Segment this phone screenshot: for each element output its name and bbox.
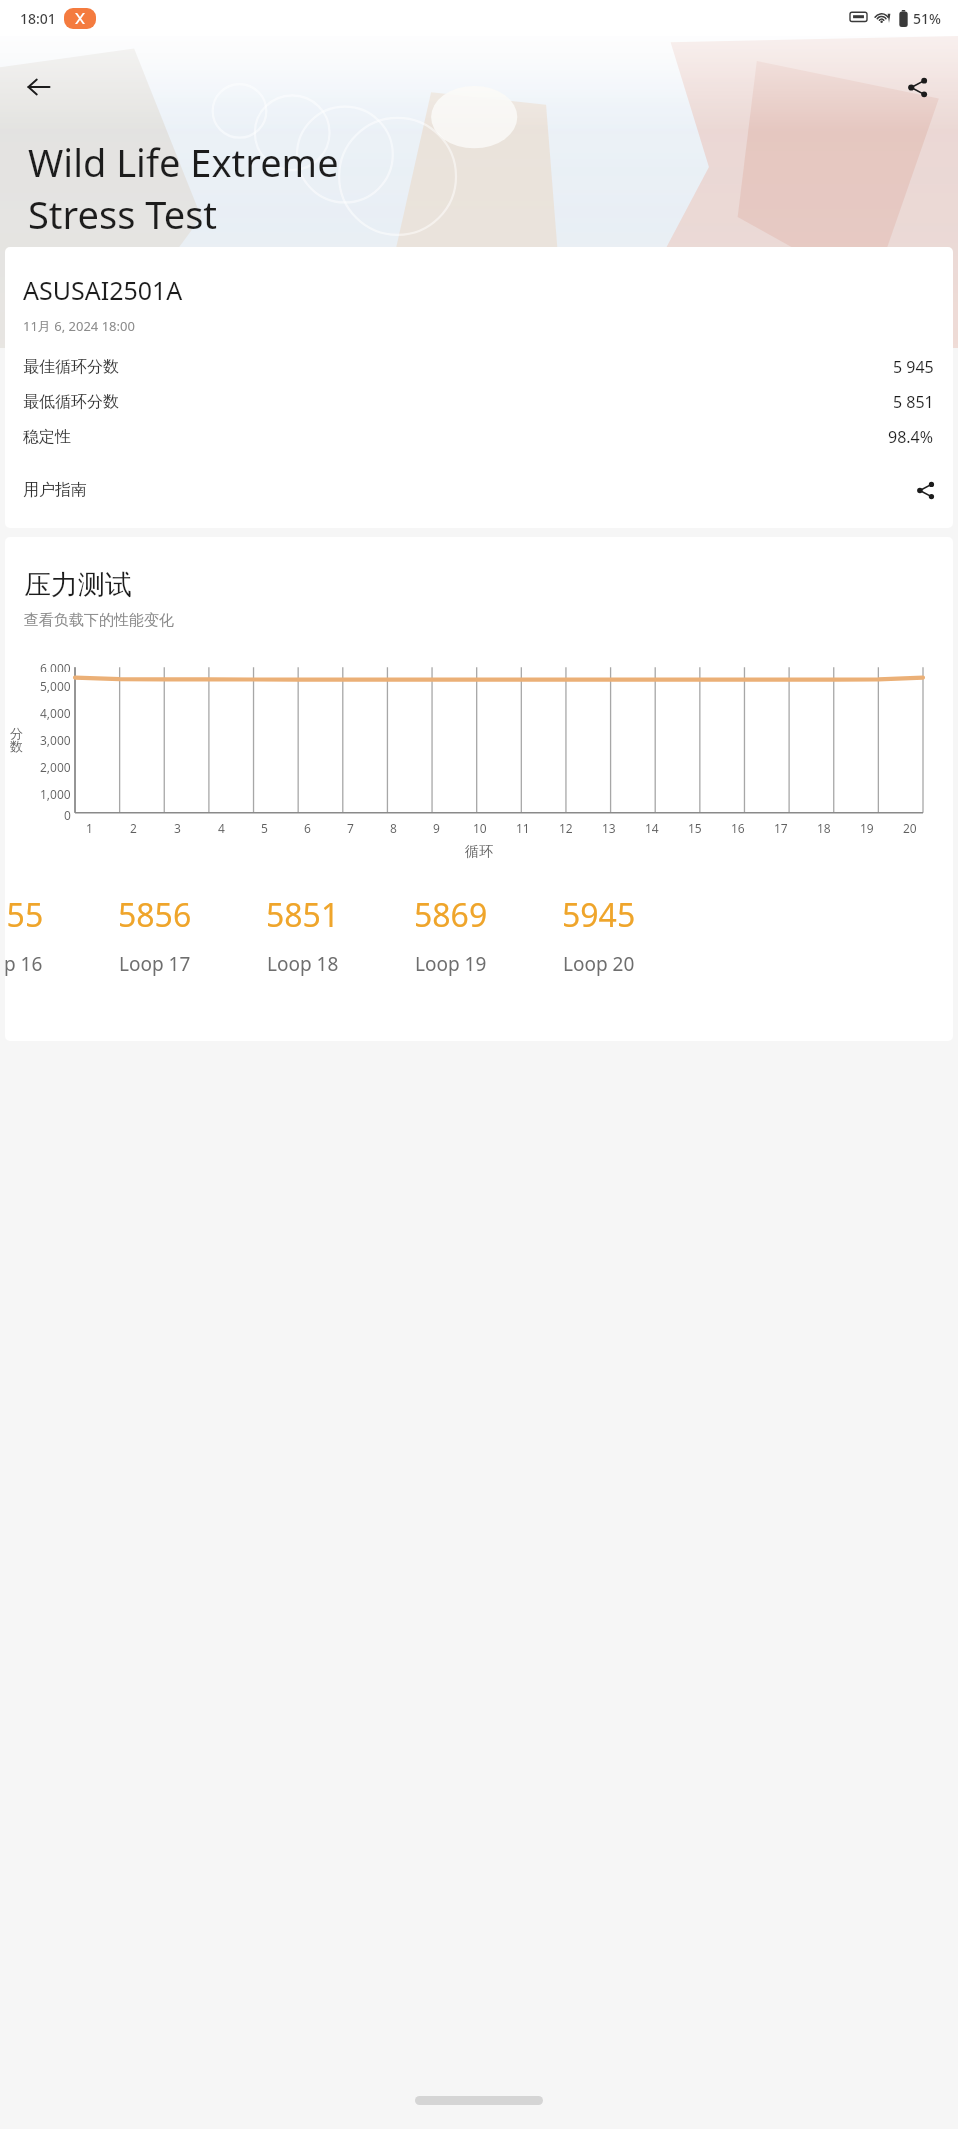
button[interactable]: Back (10, 58, 68, 116)
button[interactable]: 5945 (534, 873, 664, 997)
staticText: 17 (774, 820, 788, 836)
staticText: 3 (174, 820, 181, 836)
button[interactable]: 3DMark (64, 8, 96, 29)
staticText: Loop 18 (267, 951, 339, 977)
button[interactable]: 用户指南 (5, 468, 953, 512)
staticText: 5 851 (893, 391, 934, 413)
staticText: 11月 6, 2024 18:00 (23, 317, 135, 335)
staticText: 5 (261, 820, 268, 836)
staticText: 1,000 (40, 786, 71, 802)
button[interactable]: 5855 (5, 873, 72, 997)
staticText: 4 (218, 820, 225, 836)
staticText: 5856 (118, 893, 192, 937)
staticText: 最佳循环分数 (23, 357, 119, 377)
staticText: 19 (860, 820, 874, 836)
button[interactable]: 5856 (90, 873, 220, 997)
staticText: 20 (903, 820, 917, 836)
staticText: 7 (347, 820, 354, 836)
staticText: 6 (304, 820, 311, 836)
staticText: 压力测试 (24, 568, 132, 602)
button[interactable]: Share (888, 58, 946, 116)
staticText: 18 (817, 820, 831, 836)
staticText: 8 (390, 820, 397, 836)
staticText: 5945 (562, 893, 636, 937)
staticText: 11 (516, 820, 530, 836)
staticText: 5851 (266, 893, 340, 937)
staticText: 14 (645, 820, 659, 836)
staticText: 18:01 (20, 9, 56, 28)
staticText: 5869 (414, 893, 488, 937)
staticText: 10 (473, 820, 487, 836)
staticText: 5855 (5, 893, 44, 937)
staticText: 循环 (465, 843, 493, 861)
staticText: 查看负载下的性能变化 (24, 611, 174, 630)
staticText: 5 945 (893, 356, 934, 378)
staticText: 0 (64, 807, 71, 820)
staticText: 2 (130, 820, 137, 836)
staticText: 51% (913, 9, 941, 28)
staticText: 最低循环分数 (23, 392, 119, 412)
staticText: Wild Life Extreme (28, 136, 339, 188)
staticText: 4,000 (40, 705, 71, 721)
staticText: Loop 17 (119, 951, 191, 977)
staticText: 13 (602, 820, 616, 836)
staticText: 3,000 (40, 732, 71, 748)
button[interactable]: 5869 (386, 873, 516, 997)
staticText: 1 (86, 820, 93, 836)
staticText: Loop 19 (415, 951, 487, 977)
button[interactable]: 5851 (238, 873, 368, 997)
staticText: 分 数 (10, 725, 23, 755)
staticText: Loop 16 (5, 951, 43, 977)
staticText: 16 (731, 820, 745, 836)
staticText: 5,000 (40, 678, 71, 694)
staticText: 12 (559, 820, 573, 836)
staticText: 2,000 (40, 759, 71, 775)
staticText: 98.4% (888, 426, 934, 448)
staticText: Loop 20 (563, 951, 635, 977)
staticText: ASUSAI2501A (23, 273, 183, 307)
staticText: 用户指南 (23, 480, 87, 500)
staticText: 稳定性 (23, 427, 71, 447)
staticText: Stress Test (28, 188, 218, 240)
staticText: 9 (433, 820, 440, 836)
staticText: 15 (688, 820, 702, 836)
staticText: 6,000 (40, 660, 71, 672)
